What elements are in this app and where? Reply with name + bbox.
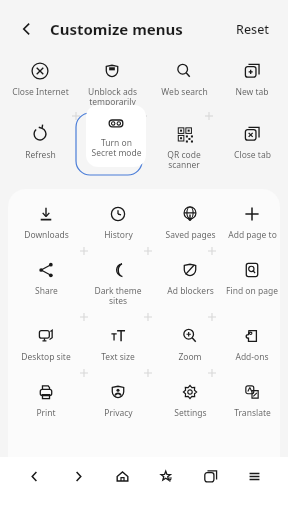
button[interactable]: Close tab	[220, 121, 284, 161]
staticText: Share	[35, 285, 58, 297]
staticText: New tab	[235, 86, 269, 98]
staticText: Text size	[101, 351, 135, 363]
staticText: Turn on Secret mode	[91, 137, 142, 159]
button[interactable]: Downloads	[10, 201, 82, 241]
staticText: Ad blockers	[167, 285, 214, 297]
button[interactable]: Ad blockers	[154, 257, 226, 297]
button[interactable]: QR code scanner	[148, 121, 220, 171]
staticText: Desktop site	[21, 351, 71, 363]
button[interactable]: Add page to	[226, 201, 278, 241]
button[interactable]: Back	[16, 459, 52, 493]
button[interactable]: Web search	[148, 58, 220, 98]
button[interactable]: Text size	[82, 323, 154, 363]
staticText: Translate	[234, 407, 271, 419]
button[interactable]: Turn on Secret mode	[86, 105, 146, 167]
staticText: Add-ons	[235, 351, 269, 363]
button[interactable]: Home	[104, 459, 140, 493]
button[interactable]: Forward	[60, 459, 96, 493]
staticText: Close Internet	[12, 86, 69, 98]
button[interactable]: Reset	[232, 17, 274, 42]
button[interactable]: Unblock ads temporarily	[76, 58, 148, 108]
button[interactable]: Menu	[236, 459, 272, 493]
button[interactable]: Privacy	[82, 379, 154, 419]
staticText: Unblock ads temporarily	[88, 86, 137, 108]
staticText: Close tab	[234, 149, 271, 161]
button[interactable]: History	[82, 201, 154, 241]
staticText: Customize menus	[50, 19, 183, 39]
button[interactable]: Dark theme sites	[82, 257, 154, 307]
button[interactable]: Zoom	[154, 323, 226, 363]
staticText: Downloads	[24, 229, 69, 241]
button[interactable]: Find on page	[226, 257, 278, 297]
staticText: Dark theme sites	[94, 285, 142, 307]
staticText: Find on page	[226, 285, 278, 297]
button[interactable]: Translate	[226, 379, 278, 419]
button[interactable]: New tab	[220, 58, 284, 98]
staticText: Zoom	[178, 351, 202, 363]
staticText: Web search	[161, 86, 208, 98]
button[interactable]: Refresh	[4, 121, 76, 161]
staticText: History	[104, 229, 133, 241]
staticText: Print	[36, 407, 56, 419]
staticText: Privacy	[104, 407, 133, 419]
staticText: Settings	[174, 407, 207, 419]
button[interactable]: Share	[10, 257, 82, 297]
button[interactable]: Settings	[154, 379, 226, 419]
button[interactable]: Print	[10, 379, 82, 419]
button[interactable]: Bookmarks	[148, 459, 184, 493]
button[interactable]: Saved pages	[154, 201, 226, 241]
button[interactable]: Tabs	[192, 459, 228, 493]
button[interactable]: Close Internet	[4, 58, 76, 98]
button[interactable]: Add-ons	[226, 323, 278, 363]
button[interactable]: Desktop site	[10, 323, 82, 363]
staticText: QR code scanner	[167, 149, 201, 171]
button[interactable]: Back	[14, 16, 40, 42]
staticText: Add page to	[228, 229, 277, 241]
staticText: Reset	[236, 21, 270, 38]
staticText: Saved pages	[165, 229, 216, 241]
staticText: Refresh	[25, 149, 56, 161]
